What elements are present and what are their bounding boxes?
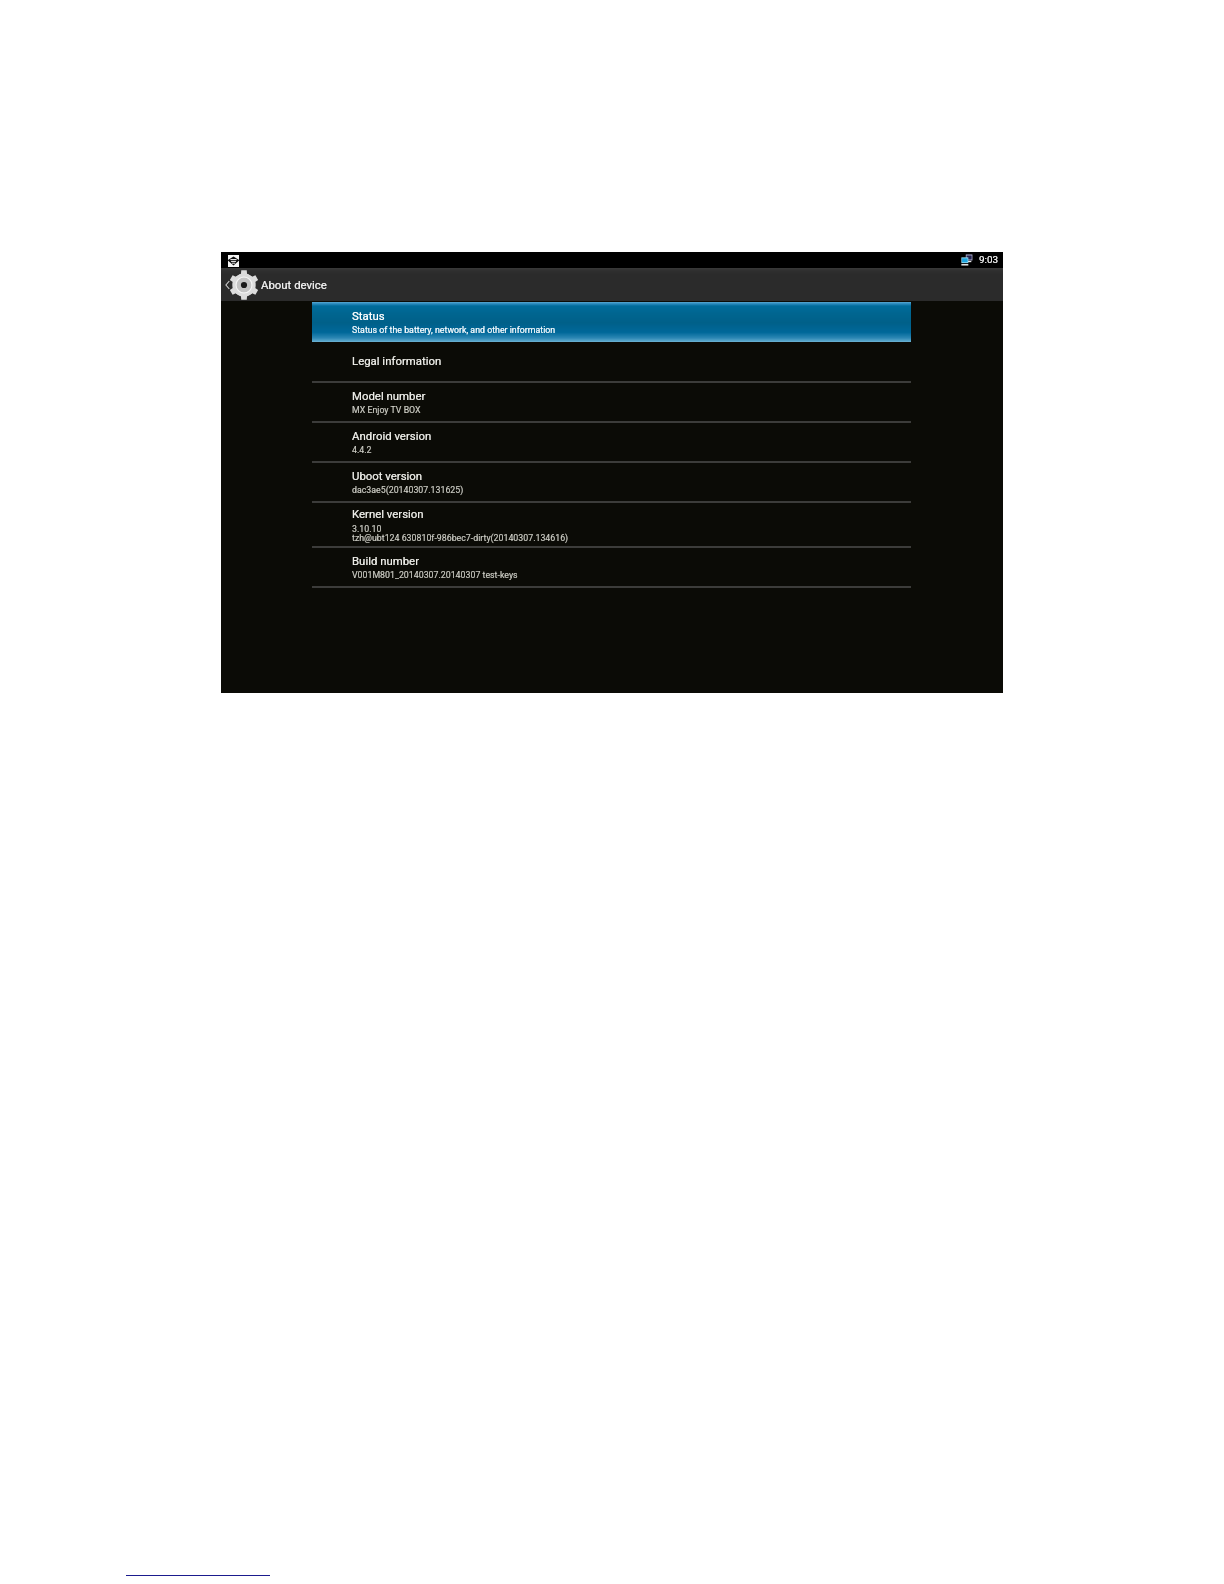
staticText: About device [261, 278, 327, 291]
staticText: Status of the battery, network, and othe… [352, 325, 556, 335]
staticText: Build number [352, 554, 420, 567]
staticText: MX Enjoy TV BOX [352, 405, 421, 415]
staticText: Status [352, 309, 385, 322]
button[interactable]: Back to Settings [221, 268, 259, 301]
staticText: Kernel version [352, 507, 424, 520]
button[interactable]: Build number [312, 547, 911, 587]
staticText: Uboot version [352, 469, 423, 482]
button[interactable]: Android version [312, 422, 911, 462]
button[interactable]: Uboot version [312, 462, 911, 502]
staticText: 4.4.2 [352, 445, 372, 455]
staticText: Android version [352, 429, 432, 442]
staticText: Legal information [352, 354, 442, 367]
button[interactable]: Legal information [312, 342, 911, 382]
button[interactable]: Model number [312, 382, 911, 422]
staticText: V001M801_20140307.20140307 test-keys [352, 570, 518, 580]
staticText: 3.10.10 [352, 524, 382, 534]
staticText: Model number [352, 389, 426, 402]
staticText: dac3ae5(20140307.131625) [352, 485, 464, 495]
staticText: tzh@ubt124 630810f-986bec7-dirty(2014030… [352, 533, 569, 543]
button[interactable]: Status [312, 302, 911, 342]
button[interactable]: About device [259, 268, 1003, 301]
staticText: 9:03 [979, 254, 999, 266]
button[interactable]: Kernel version [312, 502, 911, 547]
